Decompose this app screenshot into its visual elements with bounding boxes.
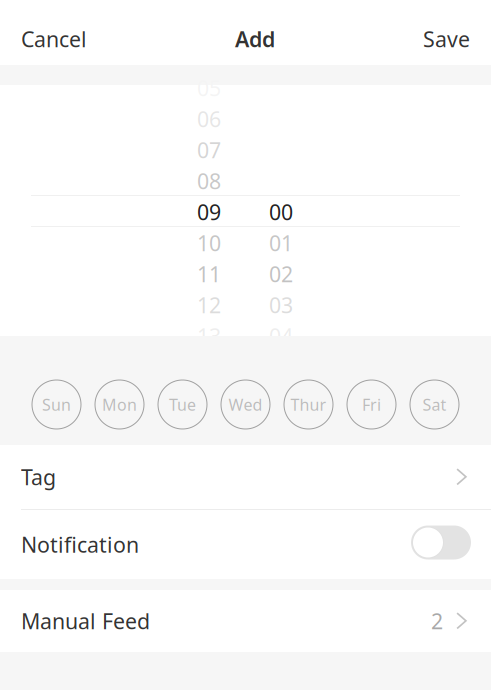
staticText: 08 [197,167,221,195]
staticText: 04 [269,322,293,350]
button[interactable]: Manual Feed [0,590,491,652]
button[interactable]: Tue [158,380,207,429]
staticText: Add [235,25,275,53]
staticText: 07 [197,136,221,164]
staticText: 10 [197,229,221,257]
button[interactable]: Thur [284,380,333,429]
staticText: 13 [197,322,221,350]
button[interactable]: Save [411,25,491,53]
staticText: Fri [362,394,381,415]
staticText: Tag [21,463,56,491]
button[interactable]: Mon [95,380,144,429]
staticText: 2 [431,607,443,635]
staticText: Tue [169,394,196,415]
staticText: Mon [102,394,137,415]
staticText: 11 [197,260,221,288]
staticText: 00 [269,198,293,226]
staticText: 05 [197,74,221,102]
button[interactable]: Sat [410,380,459,429]
button[interactable]: Fri [347,380,396,429]
staticText: 03 [269,291,293,319]
staticText: 06 [197,105,221,133]
button[interactable]: Cancel [0,25,99,53]
button[interactable]: Wed [221,380,270,429]
staticText: 01 [269,229,293,257]
staticText: Manual Feed [21,607,150,635]
staticText: Save [423,25,470,53]
staticText: Notification [21,530,139,559]
staticText: Thur [290,394,326,415]
staticText: 12 [197,291,221,319]
staticText: Sun [42,394,71,415]
button[interactable]: Sun [32,380,81,429]
staticText: 02 [269,260,293,288]
staticText: 09 [197,198,221,226]
staticText: Sat [422,394,446,415]
staticText: Cancel [21,25,87,53]
button[interactable]: Tag [0,445,491,509]
button[interactable]: Notification [411,525,471,563]
staticText: Wed [228,394,262,415]
